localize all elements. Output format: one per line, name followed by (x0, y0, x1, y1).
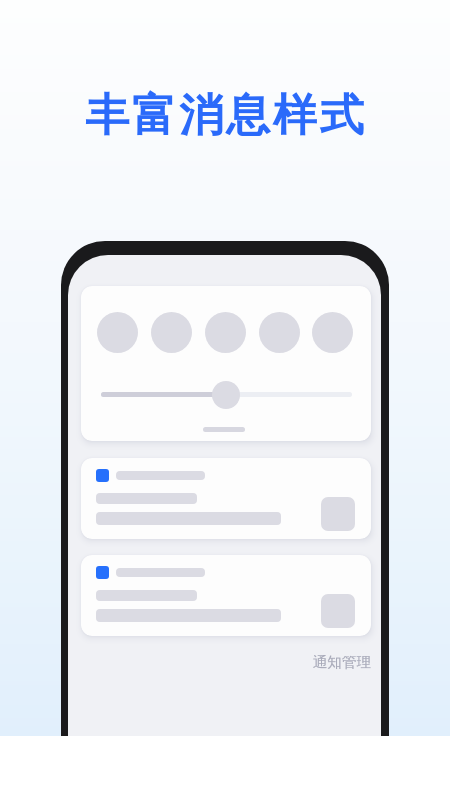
button[interactable]: Wi-Fi (81, 286, 371, 441)
button[interactable]: Expand quick settings (203, 427, 245, 432)
staticText: 通知管理 (312, 653, 371, 671)
button[interactable] (81, 555, 371, 636)
button[interactable]: Rotate (312, 312, 353, 353)
button[interactable]: Flashlight (259, 312, 300, 353)
button[interactable]: Bluetooth (151, 312, 192, 353)
button[interactable]: Brightness slider (212, 381, 240, 409)
button[interactable]: 通知管理 (312, 653, 371, 671)
button[interactable] (81, 458, 371, 539)
button[interactable]: Mobile data (205, 312, 246, 353)
staticText: 丰富消息样式 (1, 88, 450, 143)
button[interactable]: Wi-Fi (97, 312, 138, 353)
